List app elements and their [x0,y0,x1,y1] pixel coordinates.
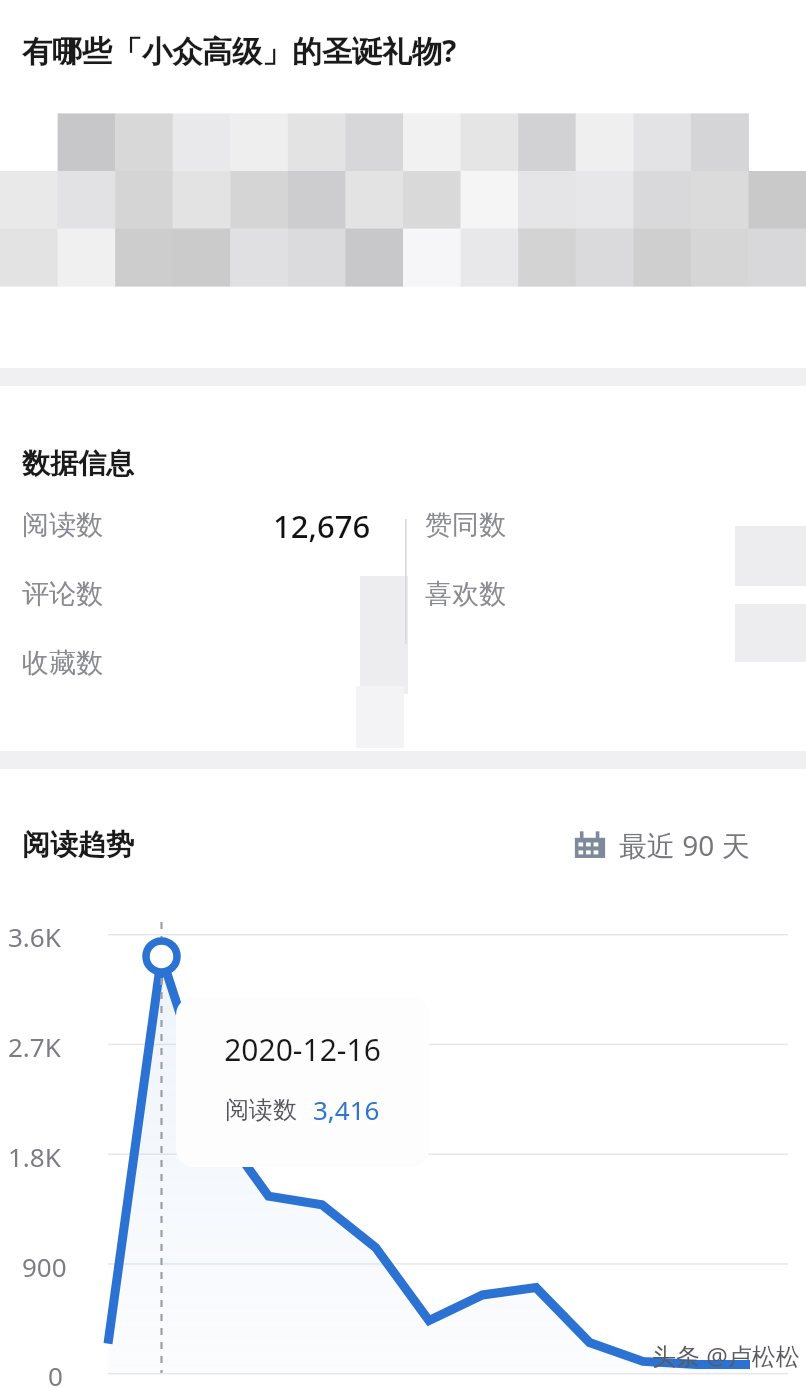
staticText: 有哪些「小众高级」的圣诞礼物? [22,30,457,71]
button[interactable]: 有哪些「小众高级」的圣诞礼物? [0,0,806,100]
staticText: 赞同数 [425,508,506,542]
staticText: 阅读数 [225,1095,297,1125]
staticText: 0 [48,1358,63,1388]
staticText: 喜欢数 [425,577,506,611]
staticText: 1.8K [8,1139,61,1174]
staticText: 3,416 [313,1092,380,1127]
button[interactable]: Select date range [572,826,750,864]
staticText: 收藏数 [22,646,103,680]
staticText: 数据信息 [22,446,134,481]
other: Select date range [572,827,608,863]
staticText: 阅读数 [22,508,103,542]
staticText: 12,676 [273,505,371,547]
staticText: 2020-12-16 [224,1029,381,1070]
staticText: 3.6K [8,919,61,954]
staticText: 900 [22,1249,67,1284]
staticText: 评论数 [22,577,103,611]
staticText: 2.7K [8,1029,61,1064]
staticText: 头条 @卢松松 [652,1339,800,1372]
staticText: 阅读趋势 [22,827,134,862]
staticText: 最近 90 天 [619,826,750,864]
button[interactable]: 2020-12-16 [176,997,429,1167]
